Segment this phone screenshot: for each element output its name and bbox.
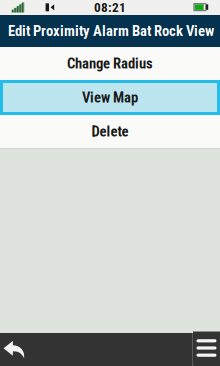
button[interactable]: Change Radius xyxy=(0,47,220,80)
button[interactable]: View Map xyxy=(0,80,220,115)
staticText: Delete xyxy=(91,123,128,140)
button[interactable]: Delete xyxy=(0,115,220,148)
staticText: 08:21 xyxy=(94,0,126,15)
button[interactable]: Menu xyxy=(193,331,220,364)
button[interactable]: Back xyxy=(0,333,192,366)
staticText: Change Radius xyxy=(67,55,153,72)
staticText: Edit Proximity Alarm Bat Rock View xyxy=(8,22,214,40)
staticText: View Map xyxy=(82,89,138,106)
